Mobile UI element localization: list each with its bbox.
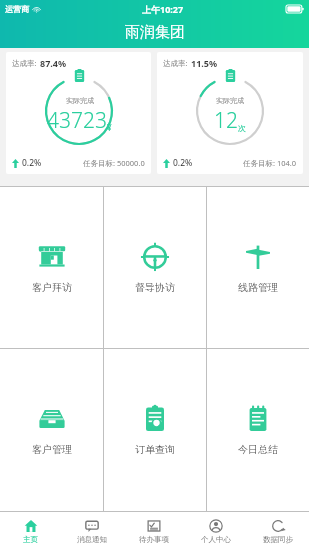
staticText: 任务目标: 50000.0 — [83, 158, 145, 168]
staticText: 0.2% — [173, 157, 193, 169]
button[interactable]: 达成率: — [157, 52, 303, 174]
staticText: 今日总结 — [238, 443, 278, 456]
button[interactable]: 客户拜访 — [0, 187, 103, 348]
staticText: 订单查询 — [135, 443, 175, 456]
staticText: 12 — [214, 106, 238, 135]
button[interactable]: 达成率: — [6, 52, 151, 174]
staticText: 线路管理 — [238, 281, 278, 294]
staticText: ¥ — [107, 122, 112, 133]
staticText: 0.2% — [22, 157, 42, 169]
staticText: 87.4% — [40, 57, 67, 69]
staticText: 任务目标: 104.0 — [243, 158, 297, 168]
button[interactable]: 个人中心 — [185, 512, 247, 550]
staticText: 主页 — [23, 535, 38, 544]
staticText: 待办事项 — [139, 535, 169, 544]
staticText: 客户拜访 — [32, 281, 72, 294]
button[interactable]: 待办事项 — [123, 512, 185, 550]
staticText: 实际完成 — [66, 96, 94, 105]
button[interactable]: 数据同步 — [247, 512, 309, 550]
staticText: 数据同步 — [263, 535, 293, 544]
staticText: 雨润集团 — [125, 23, 185, 42]
staticText: 个人中心 — [201, 535, 231, 544]
button[interactable]: 主页 — [0, 512, 61, 550]
staticText: 达成率: — [163, 58, 188, 68]
staticText: 督导协访 — [135, 281, 175, 294]
staticText: 消息通知 — [77, 535, 107, 544]
staticText: 43723 — [47, 106, 107, 135]
staticText: 11.5% — [191, 57, 218, 69]
button[interactable]: 消息通知 — [61, 512, 123, 550]
staticText: 客户管理 — [32, 443, 72, 456]
staticText: 次 — [238, 123, 246, 133]
staticText: 达成率: — [12, 58, 37, 68]
button[interactable]: 客户管理 — [0, 349, 103, 511]
staticText: 上午10:27 — [142, 3, 184, 15]
button[interactable]: 订单查询 — [104, 349, 206, 511]
button[interactable]: 线路管理 — [207, 187, 309, 348]
button[interactable]: 今日总结 — [207, 349, 309, 511]
staticText: 运营商 — [5, 4, 29, 14]
staticText: 实际完成 — [216, 96, 244, 105]
button[interactable]: 督导协访 — [104, 187, 206, 348]
